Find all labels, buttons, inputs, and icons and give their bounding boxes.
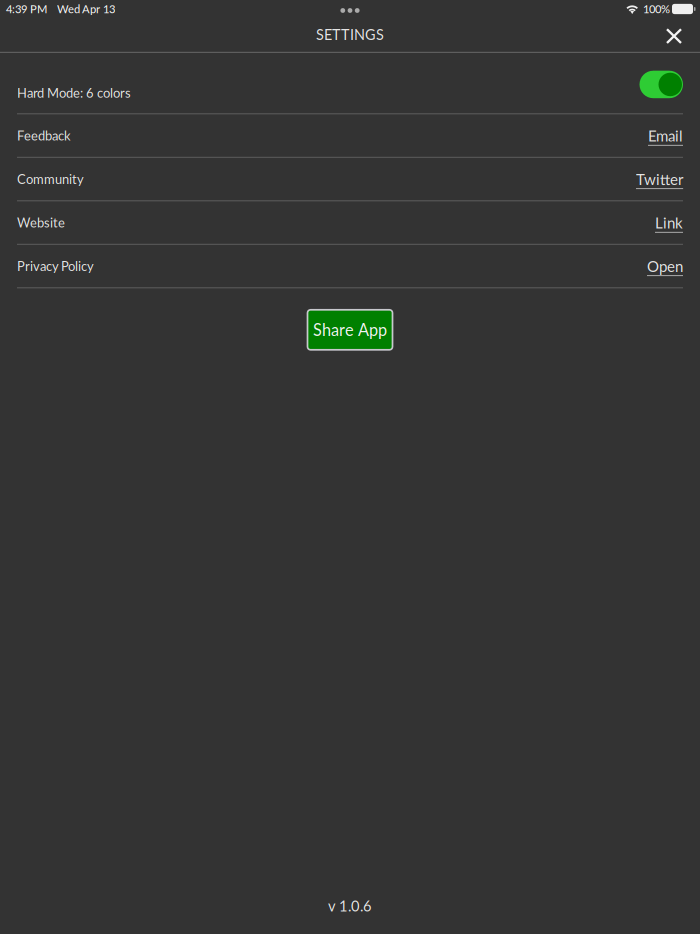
button[interactable]: Hard Mode: 6 colors: [0, 53, 700, 113]
staticText: Hard Mode: 6 colors: [17, 85, 131, 100]
staticText: v 1.0.6: [328, 897, 372, 914]
staticText: Twitter: [636, 170, 683, 188]
button[interactable]: Share App: [307, 310, 392, 350]
staticText: Feedback: [17, 128, 71, 143]
staticText: Wed Apr 13: [57, 2, 115, 16]
staticText: Community: [17, 171, 84, 187]
staticText: Open: [647, 257, 683, 275]
button[interactable]: Community: [0, 158, 700, 200]
staticText: Share App: [313, 320, 387, 339]
button[interactable]: Feedback: [0, 114, 700, 157]
button[interactable]: Privacy Policy: [0, 245, 700, 287]
staticText: 100%: [643, 2, 670, 16]
staticText: SETTINGS: [316, 26, 384, 43]
staticText: 4:39 PM: [6, 2, 47, 16]
button[interactable]: Close: [654, 22, 700, 50]
staticText: Link: [655, 213, 683, 232]
button[interactable]: Website: [0, 201, 700, 244]
staticText: Privacy Policy: [17, 258, 94, 274]
staticText: Website: [17, 215, 65, 230]
staticText: Email: [648, 126, 683, 145]
